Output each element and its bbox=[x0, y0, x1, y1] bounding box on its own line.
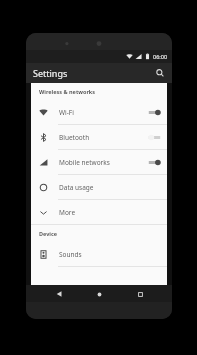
staticText: Device bbox=[39, 230, 58, 237]
staticText: Wi-Fi bbox=[59, 108, 148, 117]
staticText: Mobile networks bbox=[59, 158, 148, 167]
button[interactable]: Bluetooth toggle bbox=[148, 134, 161, 141]
staticText: 06:00 bbox=[153, 53, 168, 60]
button[interactable]: Back bbox=[51, 286, 67, 302]
button[interactable]: More bbox=[31, 200, 167, 224]
staticText: Bluetooth bbox=[59, 133, 148, 142]
button[interactable]: Bluetooth bbox=[31, 125, 167, 149]
staticText: Sounds bbox=[59, 250, 161, 259]
button[interactable]: Sounds bbox=[31, 242, 167, 266]
button[interactable]: Home bbox=[91, 286, 107, 302]
button[interactable]: Recent apps bbox=[132, 286, 148, 302]
staticText: Settings bbox=[33, 67, 68, 79]
button[interactable]: Wi-Fi bbox=[31, 100, 167, 124]
button[interactable]: Mobile networks toggle bbox=[148, 159, 161, 166]
button[interactable]: Mobile networks bbox=[31, 150, 167, 174]
button[interactable]: Search bbox=[153, 66, 167, 80]
button[interactable]: Data usage bbox=[31, 175, 167, 199]
staticText: More bbox=[59, 208, 161, 217]
staticText: Data usage bbox=[59, 183, 161, 192]
staticText: Wireless & networks bbox=[39, 88, 96, 95]
button[interactable]: Wi-Fi toggle bbox=[148, 109, 161, 116]
